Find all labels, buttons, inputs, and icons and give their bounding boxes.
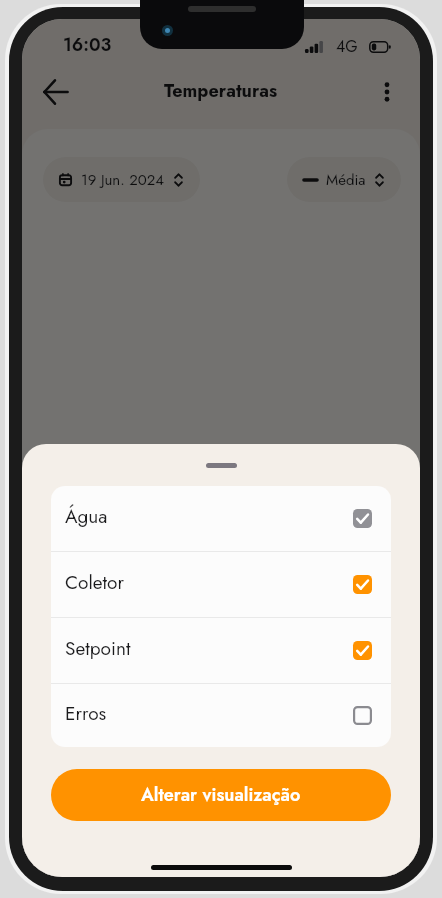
button[interactable]: Toggle xyxy=(353,641,372,660)
button[interactable]: Toggle xyxy=(353,509,372,528)
staticText: Erros xyxy=(65,700,107,727)
staticText: Setpoint xyxy=(65,635,131,662)
button[interactable]: Toggle xyxy=(353,706,372,725)
button[interactable]: 19 Jun. 2024 xyxy=(43,157,200,202)
staticText: Coletor xyxy=(65,569,124,596)
staticText: Água xyxy=(65,503,108,530)
button[interactable]: Back xyxy=(34,70,78,114)
staticText: 4G xyxy=(336,35,358,58)
button[interactable]: Toggle xyxy=(353,575,372,594)
button[interactable]: Alterar visualização xyxy=(51,769,391,821)
button[interactable]: Erros xyxy=(51,684,391,747)
button[interactable]: Setpoint xyxy=(51,618,391,683)
staticText: Alterar visualização xyxy=(141,782,301,808)
button[interactable]: Média xyxy=(287,157,401,202)
staticText: 19 Jun. 2024 xyxy=(81,169,165,191)
staticText: Média xyxy=(326,169,366,191)
staticText: 16:03 xyxy=(63,32,112,58)
button[interactable]: Água xyxy=(51,486,391,551)
button[interactable]: Coletor xyxy=(51,552,391,617)
button[interactable]: More options xyxy=(367,72,407,112)
staticText: Temperaturas xyxy=(164,78,278,104)
